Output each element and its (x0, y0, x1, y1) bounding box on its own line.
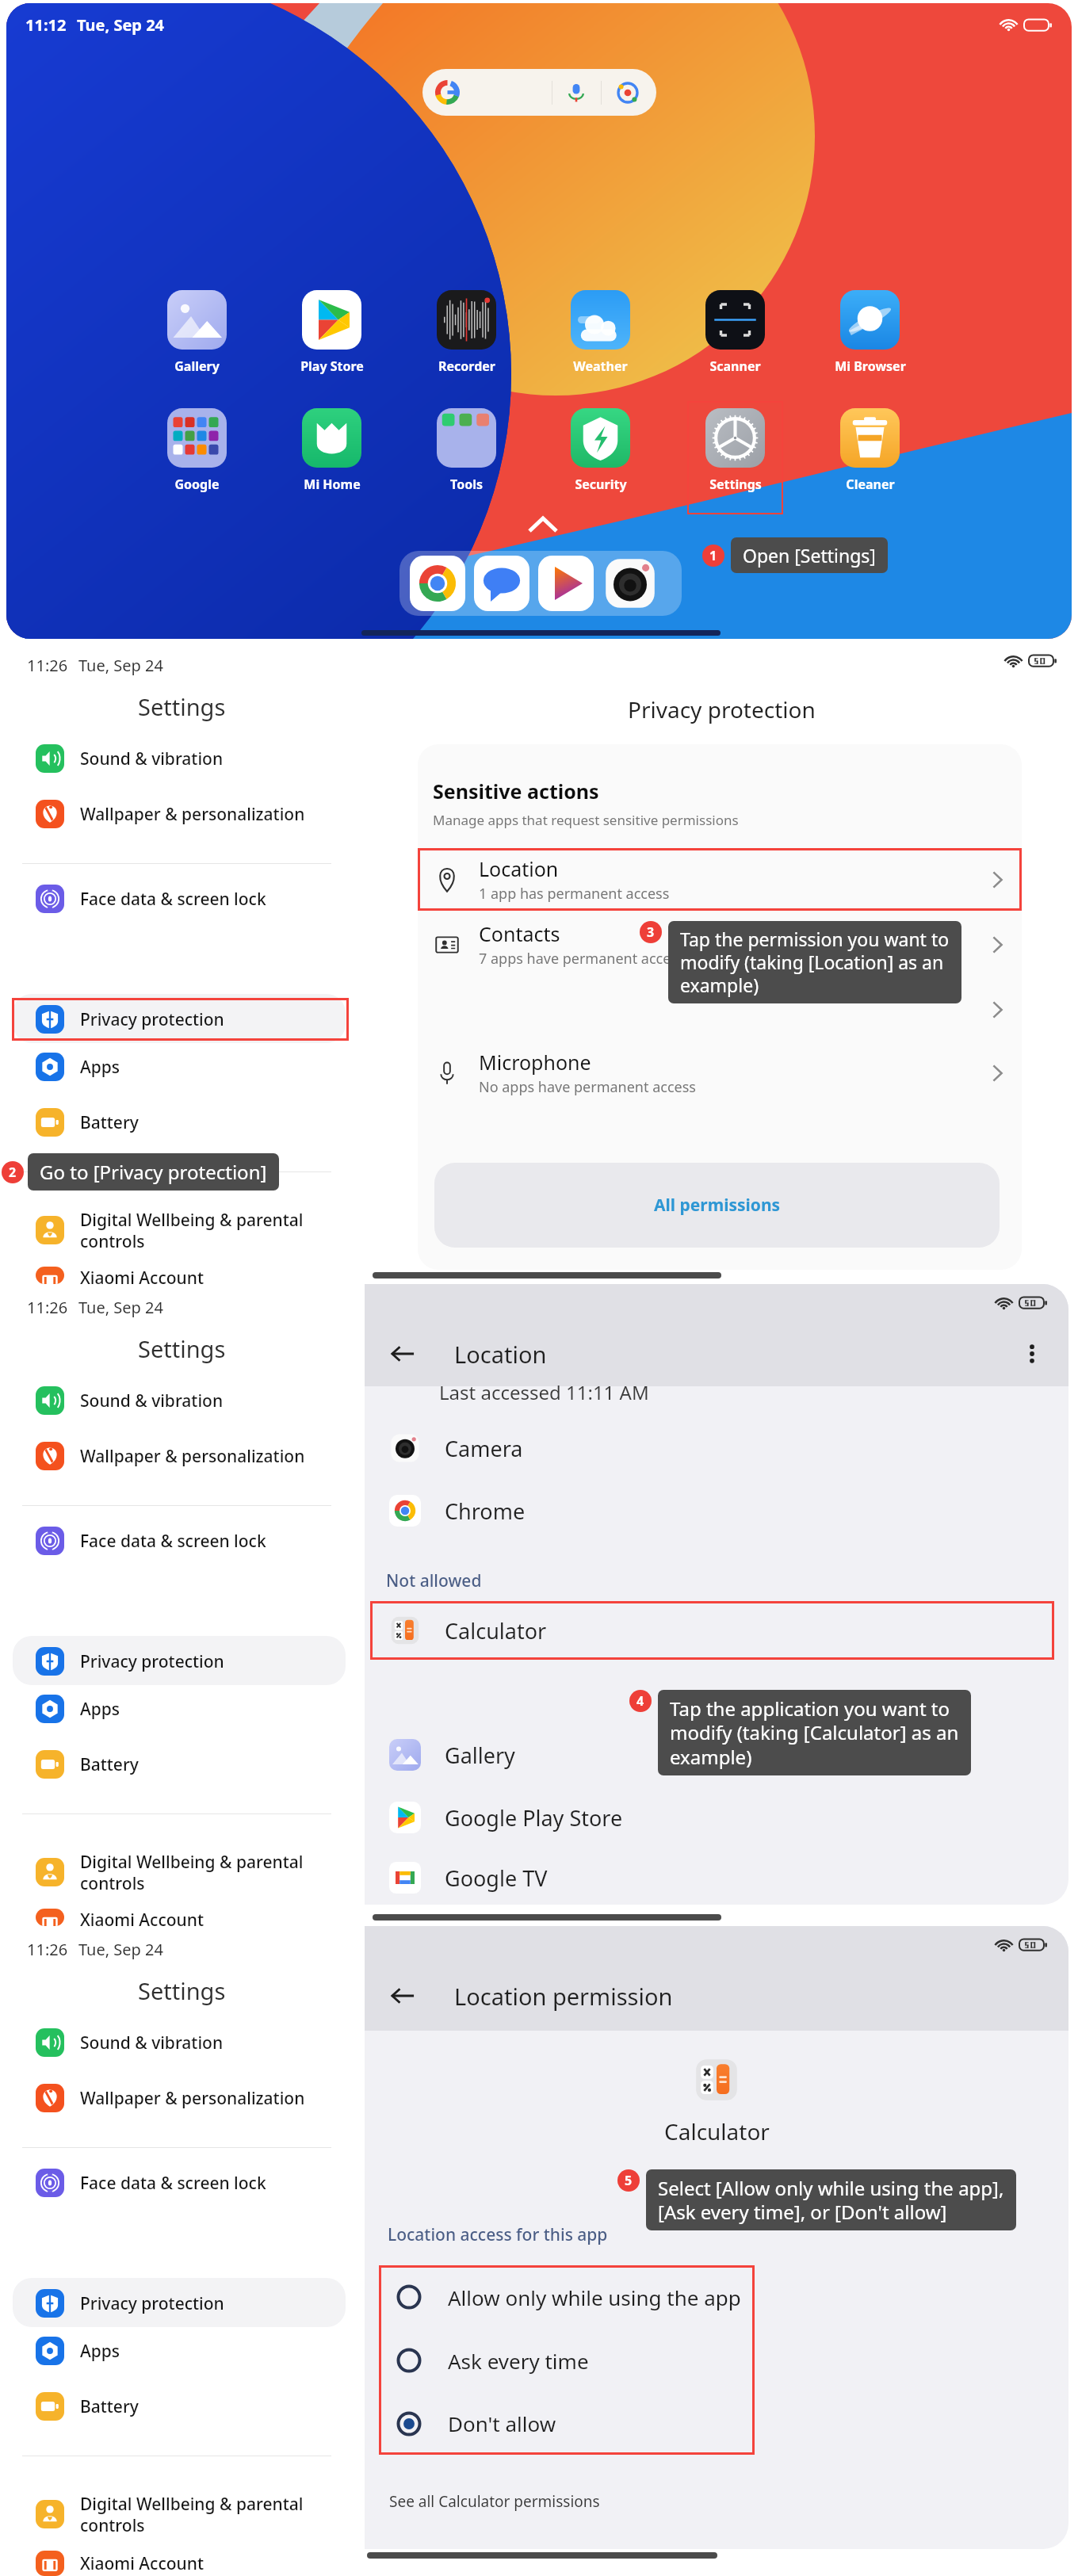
button[interactable]: Google search (422, 69, 656, 116)
button[interactable]: Chrome (410, 556, 465, 611)
button[interactable]: Back (385, 1336, 420, 1371)
button[interactable]: Xiaomi Account (12, 2551, 349, 2576)
button[interactable]: Calculator (370, 1601, 1054, 1660)
staticText: Settings (138, 1975, 226, 2006)
button[interactable]: Play Store (284, 283, 380, 396)
staticText: Face data & screen lock (80, 1530, 266, 1553)
button[interactable]: Camera (602, 556, 658, 611)
button[interactable]: Battery (12, 1743, 349, 1786)
button[interactable]: All permissions (434, 1163, 1000, 1248)
button[interactable]: Camera (370, 1419, 1054, 1477)
staticText: Wallpaper & personalization (80, 2087, 305, 2110)
staticText: All permissions (654, 1194, 781, 1217)
staticText: Google TV (445, 1863, 548, 1893)
staticText: Ask every time (448, 2347, 589, 2375)
button[interactable]: Mi Home (284, 401, 380, 514)
staticText: Xiaomi Account (80, 1267, 204, 1284)
staticText: Sensitive actions (433, 778, 599, 805)
staticText: Select [Allow only while using the app],… (658, 2175, 1004, 2225)
staticText: Location access for this app (388, 2223, 608, 2246)
staticText: 1 app has permanent access (479, 884, 670, 904)
staticText: Settings (709, 476, 762, 493)
button[interactable]: Mi Browser (822, 283, 918, 396)
button[interactable]: Battery (12, 1101, 349, 1144)
staticText: Xiaomi Account (80, 2552, 204, 2575)
button[interactable]: Sound & vibration (12, 2021, 349, 2064)
staticText: 11:26 (27, 655, 68, 676)
button[interactable]: Ask every time (379, 2329, 755, 2392)
button[interactable]: Allow only while using the app (379, 2265, 755, 2329)
staticText: 11:26 (27, 1297, 68, 1318)
button[interactable]: Messages (474, 556, 529, 611)
button[interactable]: Apps (12, 1687, 349, 1730)
button[interactable]: Google Play Store (370, 1788, 1054, 1847)
button[interactable]: Google TV (370, 1851, 1054, 1905)
staticText: 11:12 (25, 14, 67, 36)
button[interactable]: Xiaomi Account (12, 1267, 349, 1284)
button[interactable]: Wallpaper & personalization (12, 2077, 349, 2119)
staticText: No apps have permanent access (479, 1077, 696, 1097)
button[interactable]: Sound & vibration (12, 1379, 349, 1422)
staticText: Contacts (479, 920, 560, 947)
button[interactable]: Scanner (687, 283, 783, 396)
button[interactable]: Apps (12, 2329, 349, 2372)
staticText: Location (479, 855, 559, 882)
button[interactable]: Security (552, 401, 648, 514)
staticText: Tue, Sep 24 (78, 1939, 163, 1960)
button[interactable]: Chrome (370, 1481, 1054, 1540)
button[interactable]: Apps (12, 1045, 349, 1088)
staticText: Recorder (438, 357, 495, 375)
staticText: Mi Browser (835, 357, 906, 375)
staticText: Security (575, 476, 627, 493)
staticText: Sound & vibration (80, 2031, 224, 2054)
button[interactable]: Weather (552, 283, 648, 396)
button[interactable]: Xiaomi Account (12, 1909, 349, 1926)
button[interactable]: Cleaner (822, 401, 918, 514)
button[interactable]: Privacy protection (12, 998, 349, 1041)
button[interactable]: Face data & screen lock (12, 2161, 349, 2204)
button[interactable] (418, 978, 1022, 1041)
staticText: See all Calculator permissions (389, 2491, 600, 2512)
button[interactable]: More options (1016, 1338, 1048, 1370)
staticText: Tue, Sep 24 (78, 1297, 163, 1318)
button[interactable]: Microphone (418, 1041, 1022, 1104)
staticText: Microphone (479, 1049, 591, 1076)
button[interactable]: Don't allow (379, 2392, 755, 2455)
staticText: Location (454, 1339, 547, 1370)
staticText: Sound & vibration (80, 1389, 224, 1412)
button[interactable]: Digital Wellbeing & parental controls (12, 2493, 349, 2536)
button[interactable]: Privacy protection (12, 1640, 349, 1683)
staticText: Wallpaper & personalization (80, 803, 305, 826)
button[interactable]: Contacts (418, 913, 1022, 976)
staticText: Tools (450, 476, 483, 493)
button[interactable]: Digital Wellbeing & parental controls (12, 1209, 349, 1252)
button[interactable]: Wallpaper & personalization (12, 1435, 349, 1477)
staticText: Tue, Sep 24 (78, 655, 163, 676)
staticText: Open [Settings] (743, 543, 876, 568)
staticText: Calculator (664, 2116, 770, 2146)
button[interactable]: Battery (12, 2385, 349, 2428)
button[interactable]: Back (385, 1978, 420, 2013)
staticText: Google Play Store (445, 1803, 623, 1833)
staticText: Settings (138, 1333, 226, 1364)
staticText: Mi Home (304, 476, 361, 493)
button[interactable]: Wallpaper & personalization (12, 793, 349, 835)
button[interactable]: Gallery (370, 1726, 1054, 1784)
button[interactable]: Face data & screen lock (12, 877, 349, 920)
button[interactable]: Gallery (149, 283, 245, 396)
button[interactable]: Tools (419, 401, 514, 514)
staticText: Digital Wellbeing & parental controls (80, 2493, 304, 2536)
button[interactable]: Settings (687, 401, 783, 514)
button[interactable]: Face data & screen lock (12, 1519, 349, 1562)
button[interactable]: Google TV (538, 556, 594, 611)
button[interactable]: Recorder (419, 283, 514, 396)
staticText: Digital Wellbeing & parental controls (80, 1851, 304, 1894)
staticText: 11:26 (27, 1939, 68, 1960)
button[interactable]: Sound & vibration (12, 737, 349, 780)
staticText: 3 (647, 923, 655, 941)
button[interactable]: Privacy protection (12, 2282, 349, 2325)
staticText: Apps (80, 1698, 120, 1721)
button[interactable]: Digital Wellbeing & parental controls (12, 1851, 349, 1894)
button[interactable]: Location (418, 848, 1022, 911)
button[interactable]: Google (149, 401, 245, 514)
